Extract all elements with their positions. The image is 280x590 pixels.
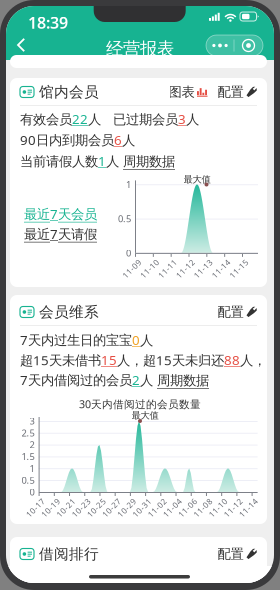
staticText: 10-27: [93, 496, 116, 506]
staticText: 10-21: [47, 496, 70, 506]
staticText: 1: [126, 178, 131, 191]
staticText: 15: [101, 351, 117, 369]
staticText: 88: [224, 351, 240, 369]
staticText: 最近7天请假: [24, 225, 97, 243]
staticText: 11-08: [184, 496, 207, 506]
staticText: 借阅排行: [39, 545, 99, 563]
button[interactable]: 配置: [217, 84, 257, 100]
staticText: 10-19: [32, 496, 55, 506]
staticText: 会员维系: [39, 303, 99, 321]
button[interactable]: 配置: [217, 546, 257, 562]
button[interactable]: 最近7天请假: [24, 225, 97, 243]
button[interactable]: 最近7天会员: [24, 205, 97, 223]
staticText: 最大值: [183, 174, 210, 185]
staticText: 22: [72, 110, 88, 128]
button[interactable]: 关闭: [234, 35, 263, 56]
staticText: 0.5: [22, 474, 35, 486]
staticText: 11-12: [215, 496, 238, 506]
staticText: 11-10: [200, 496, 223, 506]
staticText: 10-29: [108, 496, 131, 506]
staticText: 人: [186, 111, 199, 128]
staticText: 7天内借阅过的会员: [20, 371, 132, 389]
staticText: 10-17: [17, 496, 40, 506]
staticText: 有效会员: [20, 111, 72, 128]
staticText: 人: [122, 132, 135, 149]
staticText: 人，: [240, 352, 266, 369]
staticText: 配置: [217, 546, 243, 562]
staticText: 2: [132, 371, 140, 389]
staticText: 11-14: [230, 496, 253, 506]
staticText: 2: [30, 438, 35, 451]
staticText: 11-04: [154, 496, 177, 506]
button[interactable]: 返回: [17, 38, 26, 52]
staticText: 2.5: [22, 427, 35, 439]
staticText: 已过期会员: [113, 111, 178, 128]
staticText: 0.5: [118, 212, 131, 225]
staticText: 10-25: [78, 496, 101, 506]
staticText: 经营报表: [106, 38, 174, 59]
staticText: 30天内借阅过的会员数量: [79, 397, 201, 411]
staticText: 图表: [168, 84, 194, 100]
staticText: 当前请假人数: [20, 153, 98, 170]
staticText: 10-31: [124, 496, 147, 506]
staticText: 3: [178, 110, 186, 128]
button[interactable]: 图表: [168, 84, 217, 100]
staticText: 超15天未归还: [143, 351, 224, 369]
staticText: 人: [88, 111, 101, 128]
staticText: 11-13: [185, 257, 208, 267]
staticText: 11-15: [220, 257, 243, 267]
staticText: 11-11: [149, 257, 172, 267]
staticText: 10-23: [63, 496, 86, 506]
staticText: 人，: [117, 352, 143, 369]
staticText: 11-12: [167, 257, 190, 267]
staticText: 18:39: [28, 12, 68, 33]
button[interactable]: 配置: [217, 304, 257, 320]
staticText: 11-02: [139, 496, 162, 506]
staticText: 周期数据: [123, 153, 175, 170]
staticText: 人: [140, 332, 153, 349]
staticText: 90日内到期会员: [20, 131, 114, 149]
staticText: 6: [114, 131, 122, 149]
staticText: 最近7天会员: [24, 205, 97, 223]
staticText: 1.5: [22, 450, 35, 463]
staticText: 馆内会员: [39, 83, 99, 101]
staticText: 11-06: [169, 496, 192, 506]
staticText: 3: [30, 415, 35, 427]
staticText: 11-09: [113, 257, 136, 267]
staticText: 0: [30, 486, 35, 498]
staticText: 7天内过生日的宝宝: [20, 331, 132, 349]
staticText: 0: [126, 247, 131, 259]
button[interactable]: 菜单: [206, 35, 234, 56]
staticText: 人: [140, 372, 157, 389]
staticText: 1: [30, 462, 35, 474]
staticText: 0: [132, 331, 140, 349]
staticText: 人: [106, 153, 123, 170]
staticText: 1: [98, 152, 106, 170]
staticText: 周期数据: [157, 372, 209, 389]
staticText: 超15天未借书: [20, 351, 101, 369]
staticText: 配置: [217, 304, 243, 320]
staticText: 11-14: [203, 257, 226, 267]
staticText: 最大值: [131, 410, 158, 421]
staticText: 11-10: [131, 257, 154, 267]
staticText: 配置: [217, 84, 243, 100]
